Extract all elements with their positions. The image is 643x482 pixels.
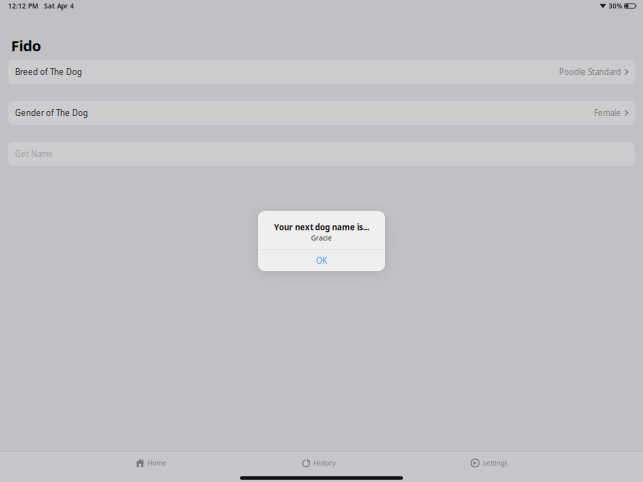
staticText: Breed of The Dog [15, 67, 82, 77]
staticText: Fido [11, 36, 41, 55]
staticText: OK [316, 255, 327, 266]
staticText: History [313, 459, 335, 467]
staticText: Get Name [15, 149, 53, 159]
staticText: Poodle Standard [559, 67, 621, 77]
staticText: Gracie [311, 233, 332, 242]
button[interactable]: Breed of The Dog [8, 60, 635, 84]
staticText: 12:12 PM [8, 2, 38, 10]
staticText: Settings [482, 459, 507, 467]
staticText: Your next dog name is... [274, 222, 369, 232]
button[interactable]: OK [258, 250, 385, 271]
button[interactable]: Home [136, 453, 166, 473]
button[interactable]: History [302, 453, 335, 473]
staticText: 30% [609, 2, 623, 10]
staticText: Gender of The Dog [15, 108, 88, 118]
button[interactable]: Gender of The Dog [8, 101, 635, 125]
button[interactable]: Settings [471, 453, 507, 473]
staticText: Female [594, 108, 621, 118]
staticText: Sat Apr 4 [44, 2, 74, 10]
staticText: Home [147, 459, 166, 467]
